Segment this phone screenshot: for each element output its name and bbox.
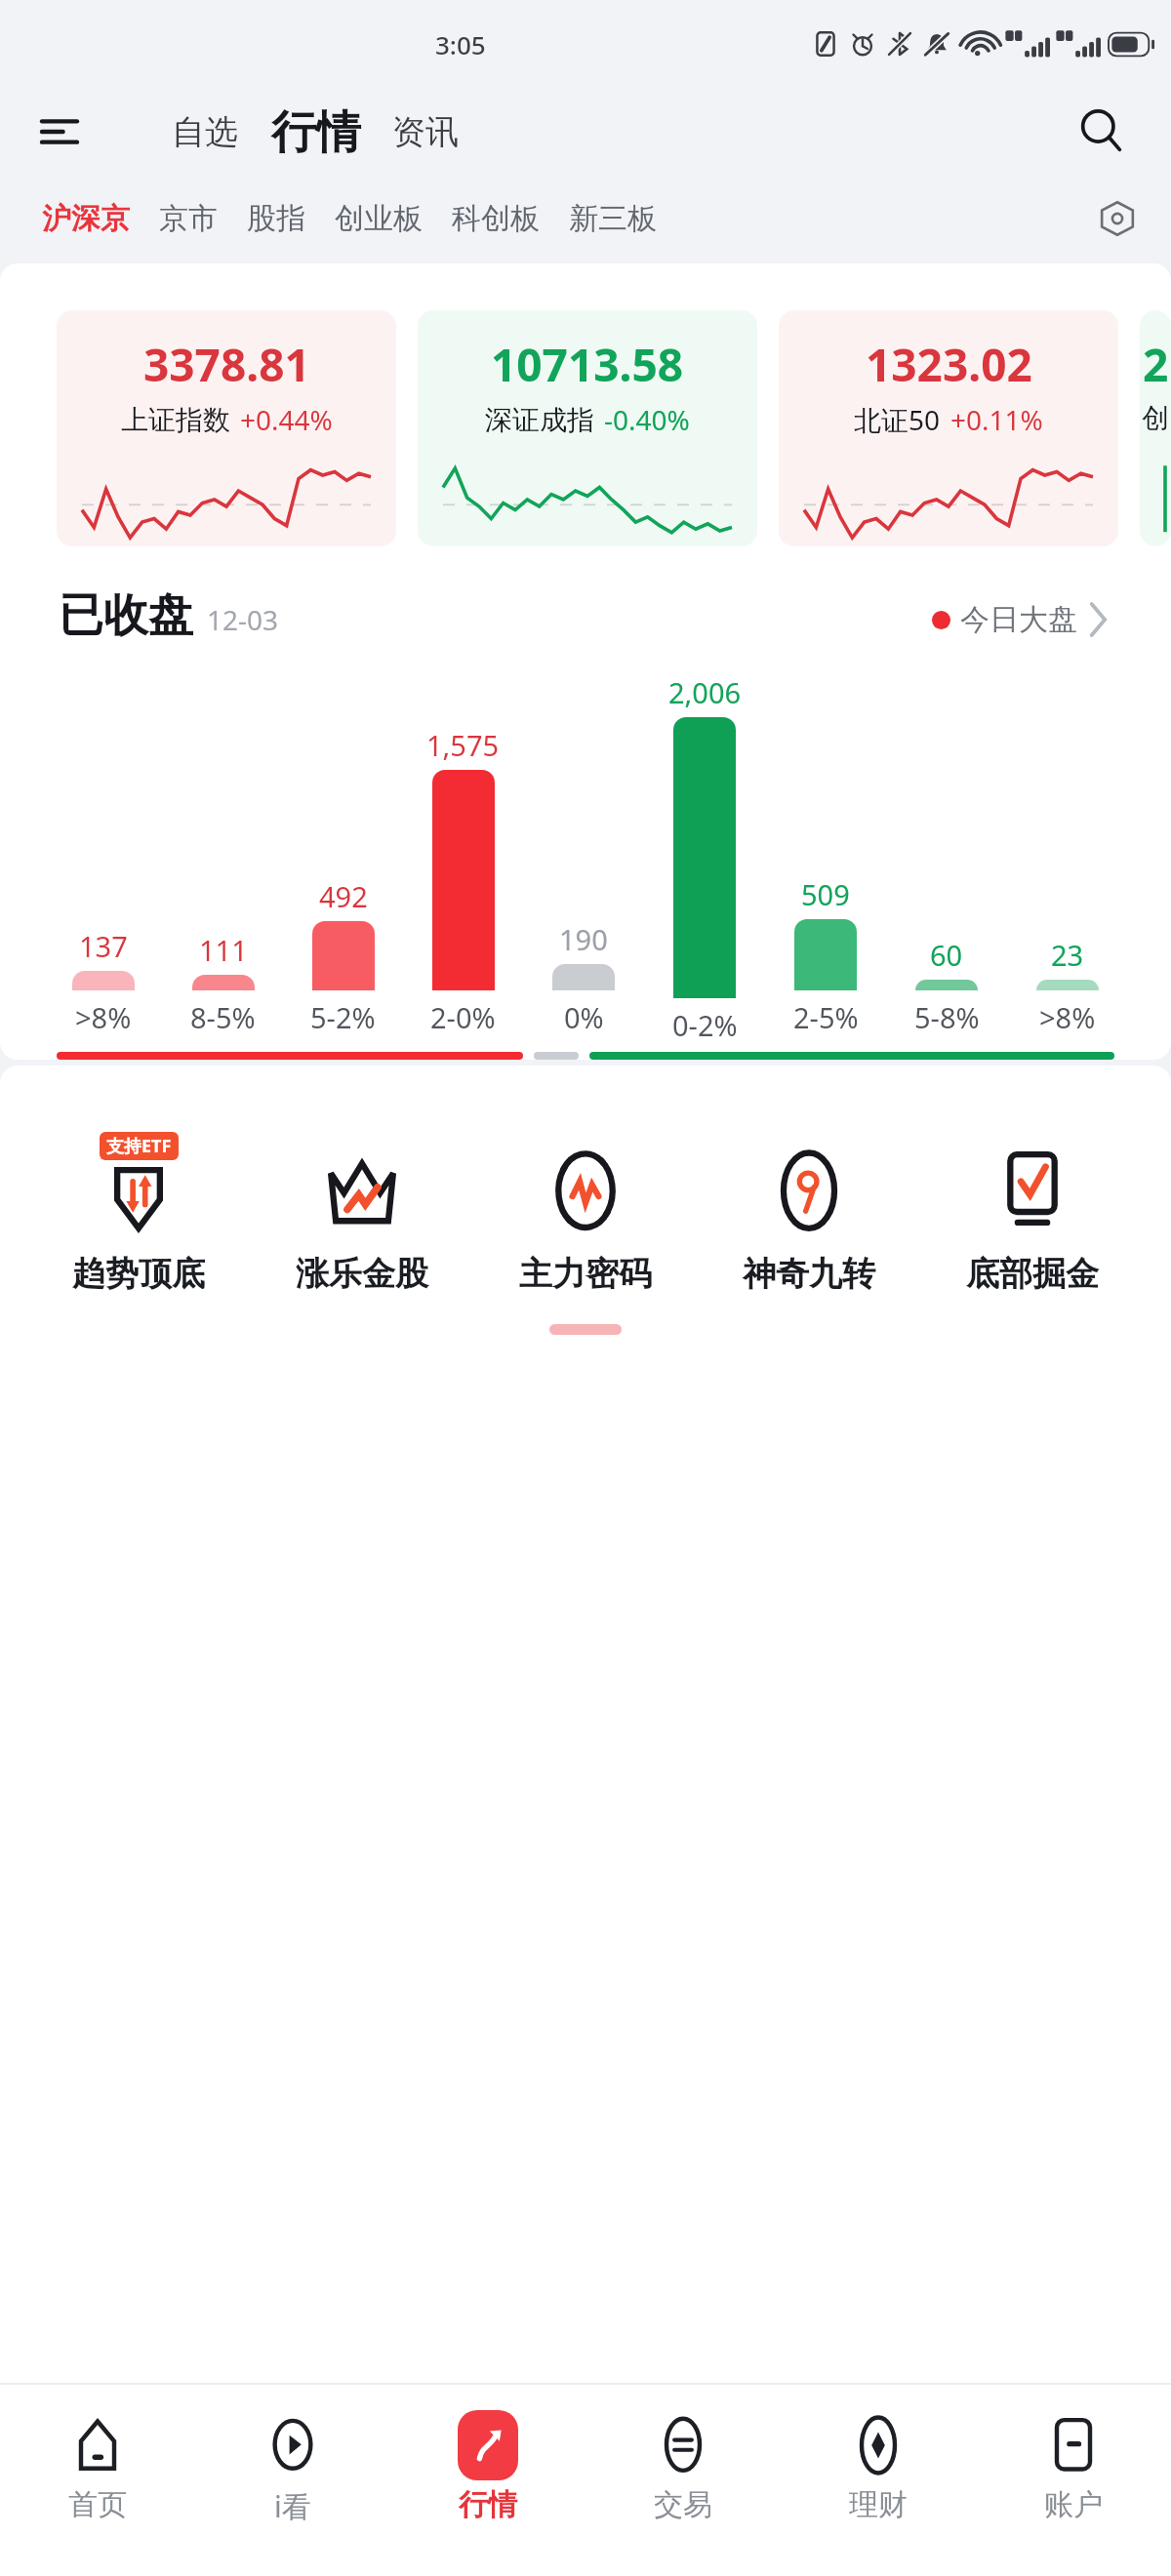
staticText: 账户 (1044, 2486, 1103, 2523)
staticText: 5-8% (914, 998, 980, 1036)
staticText: 创 (1142, 401, 1169, 435)
button[interactable]: 神奇九转 (697, 1132, 920, 1295)
staticText: 10713.58 (491, 334, 684, 395)
staticText: 今日大盘 (960, 601, 1077, 638)
staticText: 0% (564, 998, 604, 1036)
button[interactable]: 交易 (585, 2410, 781, 2523)
staticText: 涨乐金股 (296, 1253, 428, 1295)
staticText: 23 (1051, 936, 1084, 974)
staticText: 60 (930, 936, 963, 974)
staticText: 2-0% (430, 998, 496, 1036)
staticText: 北证50 (854, 401, 941, 438)
staticText: +0.44% (240, 401, 333, 438)
staticText: 科创板 (452, 200, 540, 237)
staticText: 主力密码 (519, 1253, 652, 1295)
button[interactable]: 股指 (232, 190, 320, 247)
staticText: 沪深京 (42, 200, 130, 237)
staticText: 3:05 (435, 27, 486, 61)
button[interactable]: 行情 (267, 104, 365, 161)
staticText: 137 (79, 927, 128, 965)
button[interactable]: 支持ETF (27, 1132, 250, 1295)
button[interactable]: 科创板 (437, 190, 554, 247)
button[interactable]: Customize tabs (1089, 190, 1146, 247)
button[interactable]: 主力密码 (473, 1132, 697, 1295)
button[interactable]: 京市 (144, 190, 232, 247)
staticText: 行情 (459, 2486, 517, 2523)
staticText: 首页 (68, 2486, 127, 2523)
staticText: 3378.81 (143, 334, 310, 395)
button[interactable]: 资讯 (388, 103, 463, 161)
staticText: 0-2% (672, 1006, 738, 1036)
staticText: 股指 (247, 200, 305, 237)
staticText: >8% (1039, 998, 1096, 1036)
staticText: >8% (75, 998, 132, 1036)
button[interactable]: 今日大盘 (926, 595, 1112, 644)
staticText: -0.40% (604, 401, 690, 438)
staticText: 1323.02 (866, 334, 1032, 395)
staticText: 已收盘 (59, 587, 193, 644)
button[interactable]: 理财 (781, 2410, 976, 2523)
staticText: 8-5% (190, 998, 256, 1036)
staticText: 行情 (271, 104, 361, 161)
staticText: 新三板 (569, 200, 657, 237)
staticText: 理财 (849, 2486, 908, 2523)
staticText: 支持ETF (106, 1134, 172, 1158)
staticText: 交易 (654, 2486, 712, 2523)
staticText: 底部掘金 (966, 1253, 1099, 1295)
button[interactable]: 沪深京 (27, 190, 144, 247)
staticText: 趋势顶底 (72, 1253, 205, 1295)
staticText: 12-03 (207, 601, 279, 638)
button[interactable]: 1323.02 (779, 310, 1118, 546)
button[interactable]: Search (1070, 100, 1134, 164)
staticText: i看 (274, 2486, 311, 2526)
staticText: 111 (199, 931, 248, 969)
staticText: +0.11% (950, 401, 1043, 438)
staticText: 190 (559, 920, 608, 958)
staticText: 509 (801, 875, 850, 913)
staticText: 创业板 (335, 200, 423, 237)
staticText: 神奇九转 (743, 1253, 875, 1295)
button[interactable]: 首页 (0, 2410, 195, 2523)
staticText: 京市 (159, 200, 218, 237)
staticText: 2 (1143, 334, 1169, 395)
button[interactable]: 涨乐金股 (250, 1132, 473, 1295)
button[interactable]: Menu (33, 105, 86, 158)
staticText: 深证成指 (485, 403, 594, 437)
button[interactable]: 底部掘金 (920, 1132, 1144, 1295)
button[interactable]: 新三板 (554, 190, 671, 247)
button[interactable]: 自选 (168, 103, 242, 161)
staticText: 资讯 (392, 111, 459, 153)
staticText: 上证指数 (121, 403, 230, 437)
button[interactable]: 10713.58 (418, 310, 757, 546)
button[interactable]: i看 (195, 2410, 390, 2526)
staticText: 2,006 (668, 673, 742, 711)
button[interactable]: 2 (1140, 310, 1171, 546)
staticText: 492 (319, 877, 368, 915)
staticText: 2-5% (793, 998, 859, 1036)
button[interactable]: 账户 (976, 2410, 1171, 2523)
button[interactable]: 3378.81 (57, 310, 396, 546)
staticText: 5-2% (310, 998, 376, 1036)
button[interactable]: 行情 (390, 2410, 585, 2523)
button[interactable]: 创业板 (320, 190, 437, 247)
staticText: 1,575 (426, 726, 500, 764)
staticText: 自选 (172, 111, 238, 153)
